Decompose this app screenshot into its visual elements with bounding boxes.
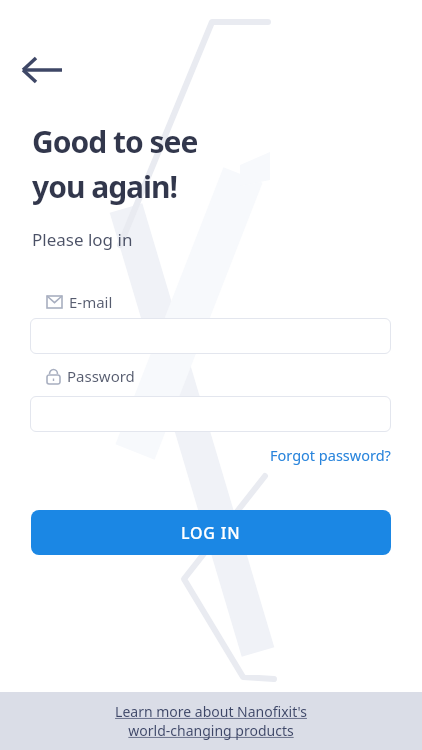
button[interactable]: Forgot password? <box>270 445 391 465</box>
button[interactable] <box>30 318 391 354</box>
staticText: LOG IN <box>181 522 241 544</box>
button[interactable]: Learn more about Nanofixit's world-chang… <box>0 692 422 750</box>
staticText: Please log in <box>32 228 133 251</box>
staticText: Password <box>67 366 135 386</box>
staticText: Forgot password? <box>270 445 391 465</box>
button[interactable] <box>14 48 70 92</box>
button[interactable]: LOG IN <box>31 510 391 555</box>
button[interactable] <box>30 396 391 432</box>
staticText: Good to see you again! <box>32 121 198 206</box>
staticText: E-mail <box>69 292 113 312</box>
staticText: Learn more about Nanofixit's world-chang… <box>115 702 307 740</box>
